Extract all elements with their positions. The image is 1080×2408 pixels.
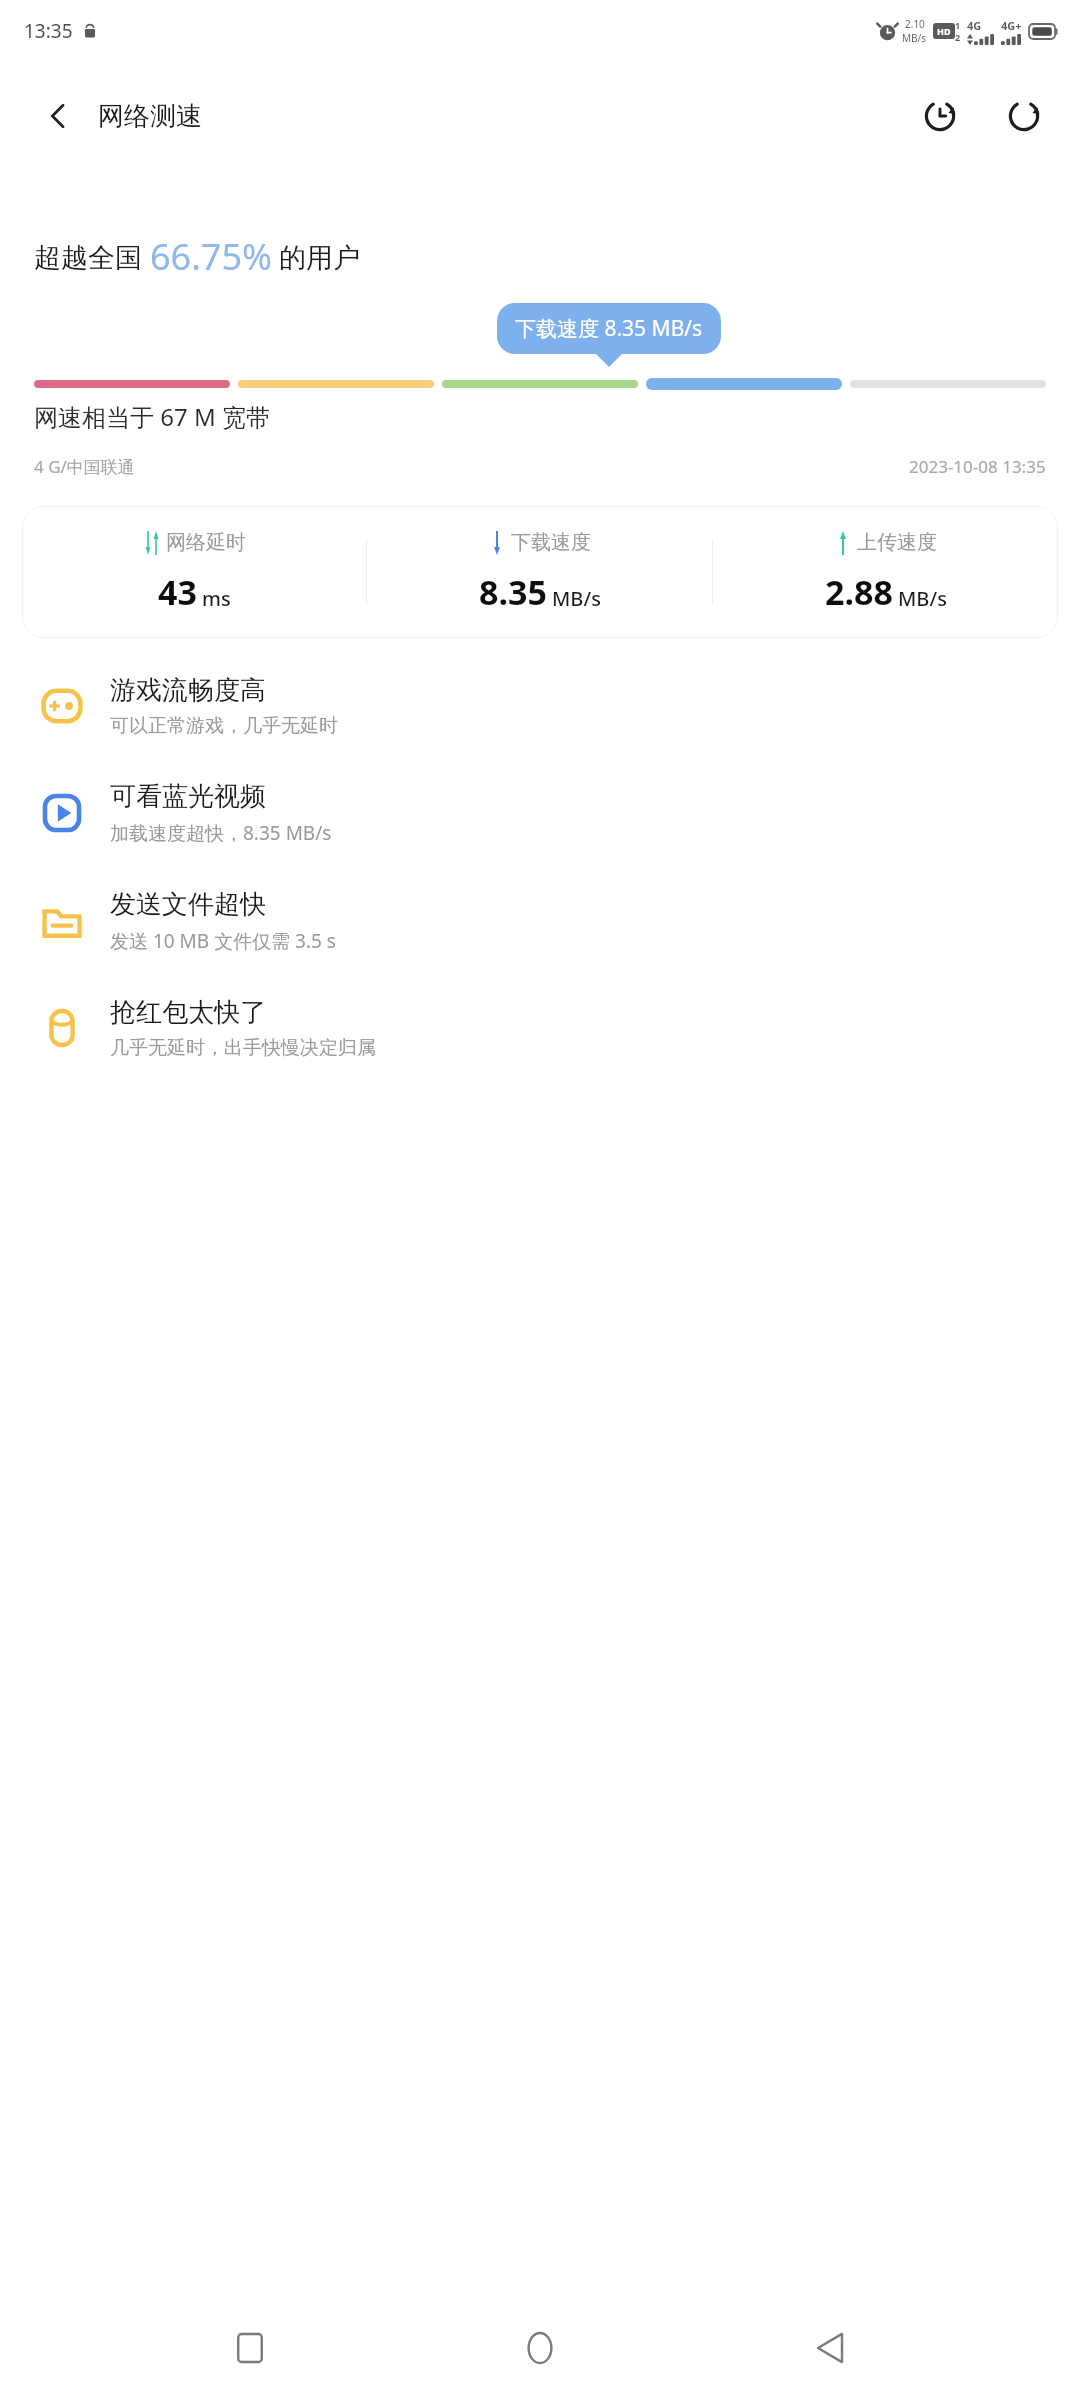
- button[interactable]: 可看蓝光视频: [0, 770, 1080, 856]
- button[interactable]: History: [910, 86, 970, 146]
- staticText: 网络测速: [98, 100, 202, 133]
- staticText: 4G: [967, 18, 982, 33]
- button[interactable]: Back: [790, 2308, 870, 2388]
- staticText: 66.75%: [150, 232, 272, 281]
- staticText: 的用户: [272, 238, 361, 275]
- staticText: 1: [955, 19, 961, 31]
- staticText: 4G+: [1001, 18, 1022, 33]
- button[interactable]: Home: [500, 2308, 580, 2388]
- staticText: ms: [202, 585, 231, 612]
- staticText: 可看蓝光视频: [110, 780, 266, 813]
- staticText: 几乎无延时，出手快慢决定归属: [110, 1036, 376, 1060]
- staticText: 2023-10-08 13:35: [909, 455, 1046, 478]
- staticText: 8.35: [479, 569, 547, 615]
- staticText: HD: [937, 25, 951, 37]
- staticText: 发送 10 MB 文件仅需 3.5 s: [110, 928, 336, 954]
- staticText: 2: [955, 31, 961, 43]
- staticText: 可以正常游戏，几乎无延时: [110, 714, 338, 738]
- staticText: 43: [158, 569, 197, 615]
- staticText: 13:35: [24, 18, 73, 44]
- button[interactable]: 发送文件超快: [0, 878, 1080, 964]
- button[interactable]: 抢红包太快了: [0, 986, 1080, 1070]
- staticText: 下载速度: [511, 530, 591, 555]
- staticText: MB/s: [552, 585, 601, 612]
- staticText: 下载速度 8.35 MB/s: [515, 314, 703, 343]
- staticText: 抢红包太快了: [110, 996, 266, 1029]
- staticText: MB/s: [902, 31, 927, 45]
- staticText: 发送文件超快: [110, 888, 266, 921]
- staticText: MB/s: [898, 585, 947, 612]
- staticText: 加载速度超快，8.35 MB/s: [110, 820, 332, 846]
- button[interactable]: Refresh: [994, 86, 1054, 146]
- staticText: 4 G/中国联通: [34, 455, 135, 478]
- staticText: 2.10: [905, 17, 925, 31]
- button[interactable]: Back: [30, 88, 86, 144]
- button[interactable]: Recents: [210, 2308, 290, 2388]
- staticText: 网速相当于 67 M 宽带: [34, 400, 270, 433]
- staticText: 2.88: [825, 569, 893, 615]
- staticText: 网络延时: [166, 530, 246, 555]
- button[interactable]: 网络延时: [22, 506, 1058, 638]
- staticText: 游戏流畅度高: [110, 674, 266, 707]
- button[interactable]: 游戏流畅度高: [0, 664, 1080, 748]
- staticText: 上传速度: [857, 530, 937, 555]
- staticText: 超越全国: [34, 238, 150, 275]
